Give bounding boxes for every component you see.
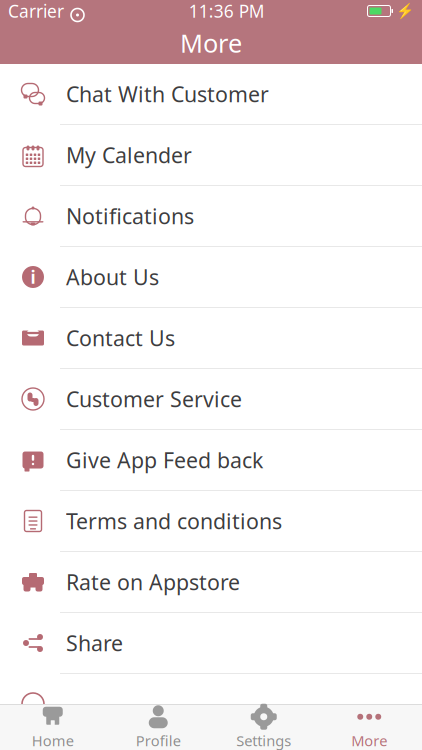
staticText: More (351, 731, 387, 750)
staticText: ⚡ (396, 3, 414, 19)
button[interactable]: Share (0, 613, 422, 674)
staticText: About Us (66, 263, 159, 291)
button[interactable]: Rate on Appstore (0, 552, 422, 613)
button[interactable] (0, 674, 422, 734)
button[interactable]: Give App Feed back (0, 430, 422, 491)
button[interactable]: Contact Us (0, 308, 422, 369)
staticText: My Calender (66, 141, 192, 169)
staticText: Rate on Appstore (66, 568, 240, 596)
button[interactable]: Notifications (0, 186, 422, 247)
staticText: Share (66, 629, 123, 657)
staticText: Home (32, 731, 74, 750)
button[interactable]: More (316, 705, 422, 750)
button[interactable]: Terms and conditions (0, 491, 422, 552)
staticText: Give App Feed back (66, 446, 263, 474)
staticText: Notifications (66, 202, 194, 230)
staticText: Customer Service (66, 385, 242, 413)
staticText: More (180, 26, 242, 60)
staticText: i (30, 265, 35, 288)
button[interactable]: i (0, 247, 422, 308)
staticText: Chat With Customer (66, 80, 269, 108)
staticText: Settings (236, 731, 291, 750)
button[interactable]: Home (0, 705, 105, 750)
button[interactable]: Settings (211, 705, 316, 750)
staticText: 11:36 PM (189, 0, 265, 22)
button[interactable]: Profile (105, 705, 211, 750)
staticText: Profile (136, 731, 181, 750)
staticText: Contact Us (66, 324, 175, 352)
staticText: Terms and conditions (66, 507, 282, 535)
button[interactable]: My Calender (0, 125, 422, 186)
staticText: Carrier (8, 0, 64, 22)
button[interactable]: Customer Service (0, 369, 422, 430)
button[interactable]: Chat With Customer (0, 64, 422, 125)
